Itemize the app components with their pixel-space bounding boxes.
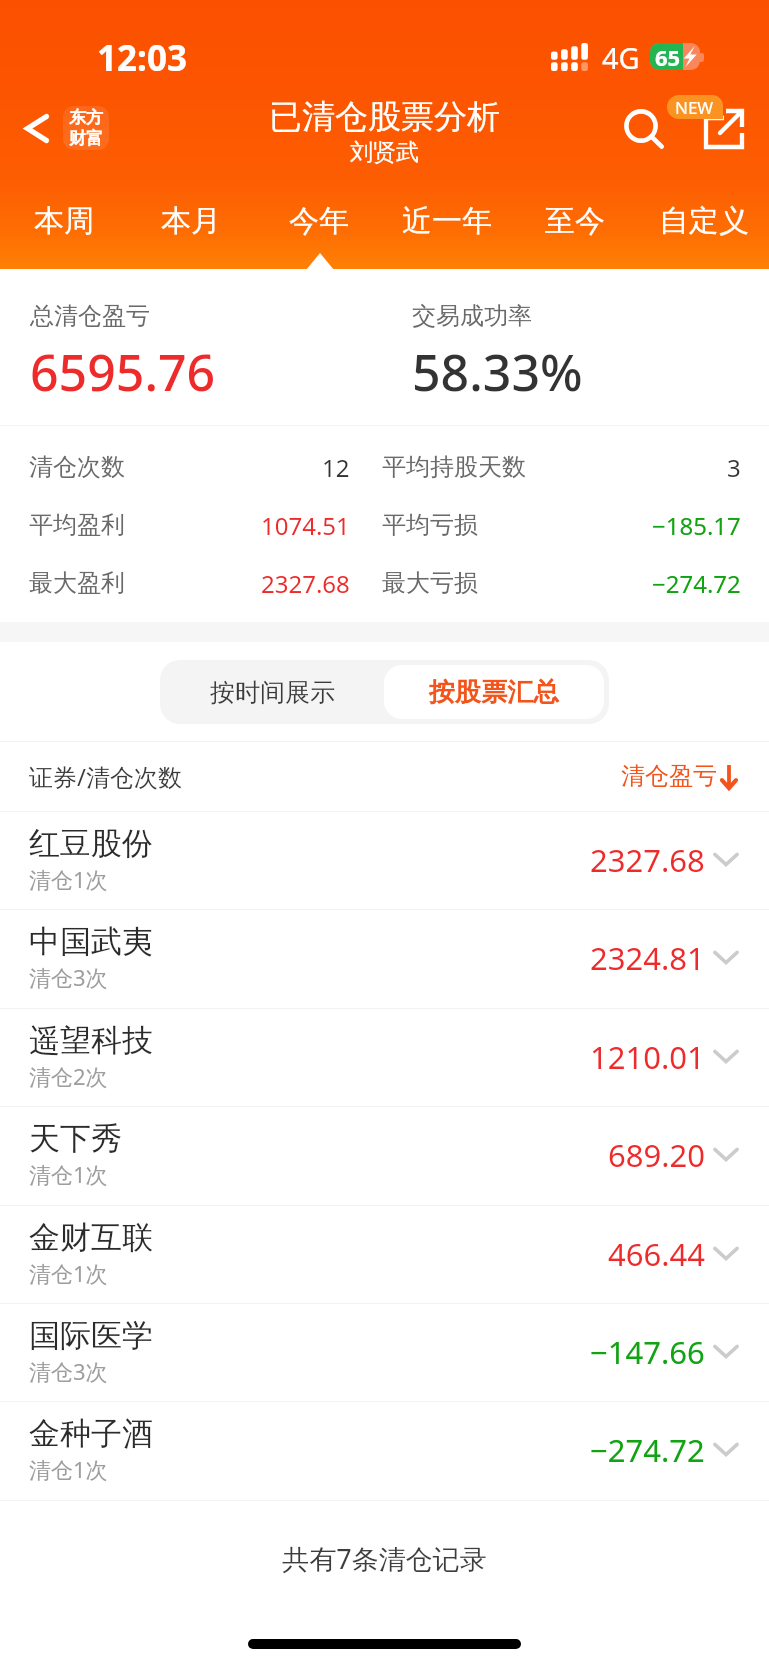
staticText: 3 [727, 451, 741, 484]
staticText: 58.33% [412, 338, 583, 406]
staticText: 国际医学 [29, 1316, 153, 1355]
staticText: 清仓1次 [29, 864, 108, 894]
staticText: 平均亏损 [382, 510, 478, 540]
staticText: 交易成功率 [412, 301, 532, 331]
staticText: 金种子酒 [29, 1414, 153, 1453]
button[interactable]: 至今 [511, 192, 639, 250]
staticText: 2324.81 [590, 937, 705, 979]
staticText: 清仓1次 [29, 1258, 108, 1288]
staticText: 近一年 [402, 202, 492, 240]
staticText: 刘贤武 [350, 138, 419, 167]
staticText: 清仓3次 [29, 962, 108, 992]
staticText: 按时间展示 [210, 677, 335, 708]
staticText: 12:03 [97, 34, 187, 82]
staticText: 红豆股份 [29, 824, 153, 863]
staticText: 清仓次数 [29, 452, 125, 482]
button[interactable]: Back [10, 103, 64, 153]
staticText: 4G [602, 38, 640, 77]
staticText: −274.72 [652, 567, 741, 600]
button[interactable]: 自定义 [640, 192, 768, 250]
staticText: 2327.68 [590, 839, 705, 881]
staticText: 本周 [34, 202, 94, 240]
staticText: 1074.51 [261, 509, 350, 542]
button[interactable]: 遥望科技 [0, 1008, 769, 1106]
button[interactable]: Search [610, 96, 672, 158]
button[interactable]: 金财互联 [0, 1205, 769, 1303]
button[interactable]: 今年 [255, 192, 383, 250]
staticText: 天下秀 [29, 1119, 122, 1158]
staticText: 平均持股天数 [382, 452, 526, 482]
staticText: 清仓盈亏 [621, 761, 717, 791]
staticText: 金财互联 [29, 1218, 153, 1257]
button[interactable]: 按股票汇总 [384, 665, 604, 719]
button[interactable]: 按时间展示 [160, 660, 384, 724]
staticText: 中国武夷 [29, 922, 153, 961]
staticText: 总清仓盈亏 [30, 301, 150, 331]
staticText: 466.44 [608, 1233, 705, 1275]
staticText: 最大亏损 [382, 568, 478, 598]
staticText: 共有7条清仓记录 [0, 1540, 769, 1577]
staticText: 今年 [289, 202, 349, 240]
staticText: 自定义 [659, 202, 749, 240]
staticText: 清仓1次 [29, 1159, 108, 1189]
button[interactable]: 本周 [0, 192, 128, 250]
staticText: 已清仓股票分析 [269, 96, 500, 138]
staticText: 清仓3次 [29, 1356, 108, 1386]
staticText: 至今 [545, 202, 605, 240]
button[interactable]: 近一年 [383, 192, 511, 250]
button[interactable]: 天下秀 [0, 1106, 769, 1204]
staticText: 证券/清仓次数 [29, 760, 182, 793]
staticText: 1210.01 [590, 1036, 705, 1078]
staticText: 清仓1次 [29, 1454, 108, 1484]
button[interactable]: East Money [63, 106, 109, 150]
staticText: −185.17 [652, 509, 741, 542]
button[interactable]: 本月 [127, 192, 255, 250]
staticText: 东方 [69, 107, 103, 128]
staticText: NEW [675, 96, 714, 119]
staticText: 2327.68 [261, 567, 350, 600]
staticText: 最大盈利 [29, 568, 125, 598]
staticText: 财富 [69, 128, 103, 149]
staticText: 按股票汇总 [429, 676, 559, 709]
button[interactable]: 中国武夷 [0, 909, 769, 1007]
staticText: 遥望科技 [29, 1021, 153, 1060]
button[interactable]: 清仓盈亏 [621, 741, 737, 811]
staticText: 65 [655, 42, 681, 69]
button[interactable]: 红豆股份 [0, 811, 769, 909]
button[interactable]: 国际医学 [0, 1303, 769, 1401]
button[interactable]: 金种子酒 [0, 1401, 769, 1499]
staticText: 清仓2次 [29, 1061, 108, 1091]
staticText: 12 [322, 451, 350, 484]
staticText: 平均盈利 [29, 510, 125, 540]
button[interactable]: Share [696, 104, 752, 156]
staticText: 689.20 [608, 1134, 705, 1176]
staticText: 本月 [161, 202, 221, 240]
staticText: −274.72 [590, 1429, 705, 1471]
staticText: −147.66 [590, 1331, 705, 1373]
staticText: 6595.76 [30, 338, 216, 406]
